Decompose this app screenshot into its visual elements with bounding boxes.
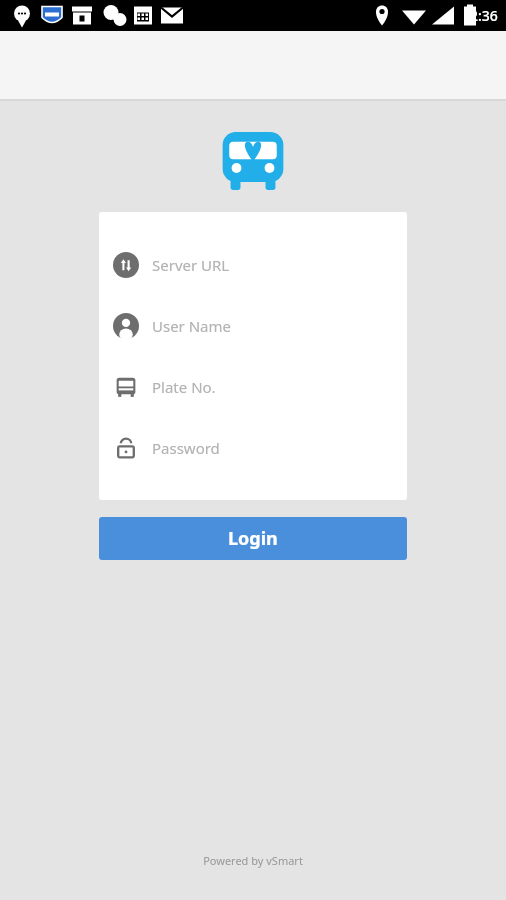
staticText: Server URL [152, 255, 230, 275]
staticText: 2:36 [470, 6, 498, 25]
staticText: Password [152, 438, 220, 458]
staticText: Plate No. [152, 377, 216, 397]
staticText: Login [228, 526, 278, 551]
button[interactable]: Plate No. [99, 356, 407, 417]
staticText: Powered by vSmart [0, 853, 506, 868]
button[interactable]: Login [99, 517, 407, 560]
staticText: User Name [152, 316, 232, 336]
button[interactable]: Password [99, 417, 407, 478]
button[interactable]: Server URL [99, 234, 407, 295]
button[interactable]: User Name [99, 295, 407, 356]
